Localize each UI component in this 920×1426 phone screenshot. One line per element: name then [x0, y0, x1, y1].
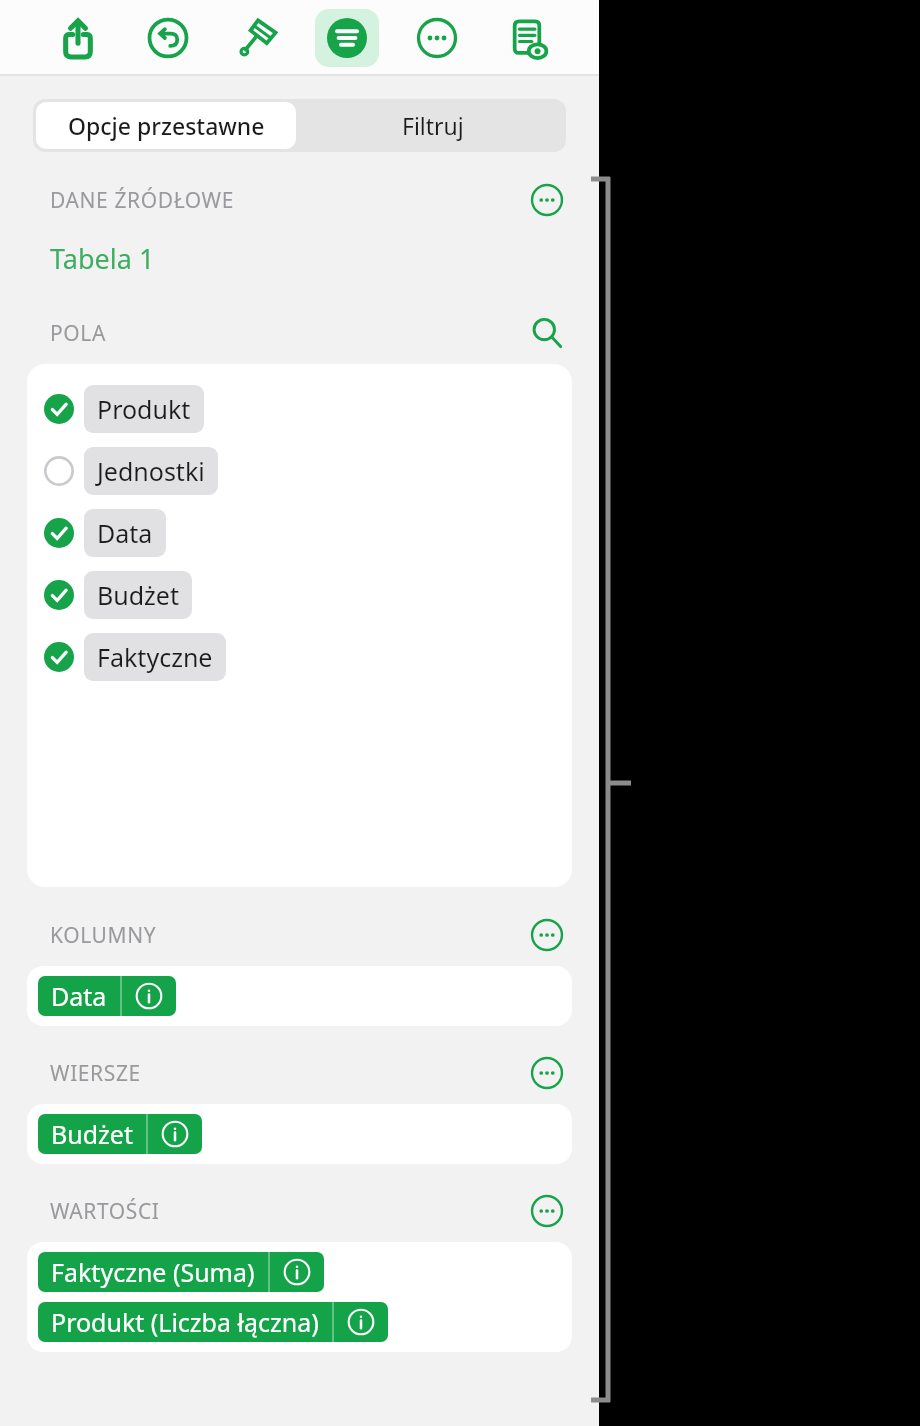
button[interactable]: Document preview [495, 9, 559, 67]
staticText: Opcje przestawne [68, 110, 265, 141]
staticText: Budżet [97, 578, 179, 612]
button[interactable]: Share [46, 9, 110, 67]
button[interactable]: Opcje przestawne [36, 102, 296, 149]
staticText: WIERSZE [50, 1059, 141, 1088]
button[interactable]: Format [226, 9, 290, 67]
staticText: Data [97, 516, 153, 550]
button[interactable]: More options [525, 182, 569, 218]
staticText: KOLUMNY [50, 921, 157, 950]
button[interactable]: Info [334, 1302, 388, 1342]
button[interactable]: More options [405, 9, 469, 67]
button[interactable]: Info [270, 1252, 324, 1292]
button[interactable]: Data [27, 502, 572, 564]
staticText: Budżet [51, 1117, 133, 1151]
button[interactable]: Data [38, 976, 176, 1016]
staticText: Faktyczne (Suma) [51, 1255, 255, 1289]
staticText: POLA [50, 319, 106, 348]
button[interactable]: Faktyczne [27, 626, 572, 688]
button[interactable]: Jednostki [27, 440, 572, 502]
staticText: Data [51, 979, 107, 1013]
button[interactable]: Tabela 1 [50, 240, 155, 277]
staticText: Produkt (Liczba łączna) [51, 1305, 319, 1339]
staticText: Filtruj [402, 110, 464, 141]
button[interactable]: Info [122, 976, 176, 1016]
staticText: WARTOŚCI [50, 1197, 160, 1226]
button[interactable]: Budżet [27, 564, 572, 626]
button[interactable]: Filtruj [299, 99, 566, 152]
staticText: Produkt [97, 392, 191, 426]
button[interactable]: Organize [315, 9, 379, 67]
staticText: Jednostki [97, 454, 205, 488]
button[interactable]: Budżet [38, 1114, 202, 1154]
button[interactable]: Search [525, 315, 569, 351]
staticText: DANE ŹRÓDŁOWE [50, 186, 235, 215]
button[interactable]: Faktyczne (Suma) [38, 1252, 324, 1292]
staticText: Faktyczne [97, 640, 213, 674]
button[interactable]: Info [148, 1114, 202, 1154]
button[interactable]: Produkt (Liczba łączna) [38, 1302, 388, 1342]
button[interactable]: More options [525, 917, 569, 953]
button[interactable]: More options [525, 1055, 569, 1091]
button[interactable]: Produkt [27, 378, 572, 440]
button[interactable]: Undo [136, 9, 200, 67]
button[interactable]: More options [525, 1193, 569, 1229]
